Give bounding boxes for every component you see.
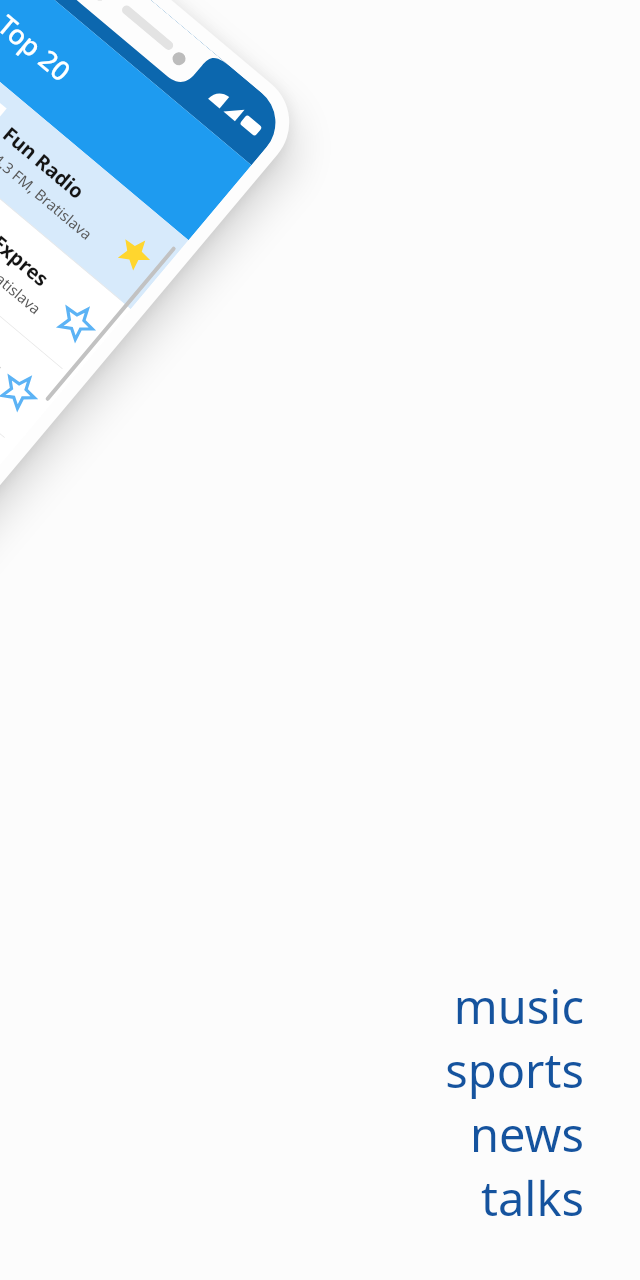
staticText: Top 20 (0, 6, 79, 89)
button[interactable]: Add to favourites (38, 284, 114, 361)
staticText: RTVS 1 Rádio Slovensko (0, 258, 14, 376)
button[interactable]: 17 (0, 216, 15, 516)
button[interactable]: 18 (0, 147, 73, 447)
button[interactable]: 20 (0, 9, 189, 309)
staticText: news (469, 1102, 584, 1166)
staticText: music (453, 974, 584, 1038)
button[interactable]: music (445, 974, 584, 1230)
staticText: 107.6 FM, Bratislava (0, 212, 46, 318)
button[interactable]: Open navigation menu (0, 0, 6, 28)
button[interactable]: 19 (0, 78, 131, 378)
staticText: talks (480, 1166, 584, 1230)
button[interactable]: Remove from favourites (96, 215, 172, 292)
button[interactable]: Add to favourites (0, 353, 57, 429)
staticText: Fun Radio (0, 121, 91, 205)
staticText: sports (445, 1038, 584, 1102)
staticText: Radio Expres (0, 190, 55, 293)
staticText: 94.3 FM, Bratislava (0, 144, 97, 244)
